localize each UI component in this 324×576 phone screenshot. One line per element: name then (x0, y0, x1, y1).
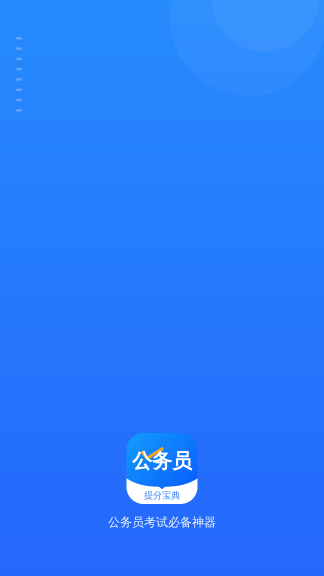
staticText: 提分宝典 (144, 490, 180, 501)
staticText: 公务员 (132, 449, 192, 473)
staticText: 公务员考试必备神器 (108, 515, 216, 530)
